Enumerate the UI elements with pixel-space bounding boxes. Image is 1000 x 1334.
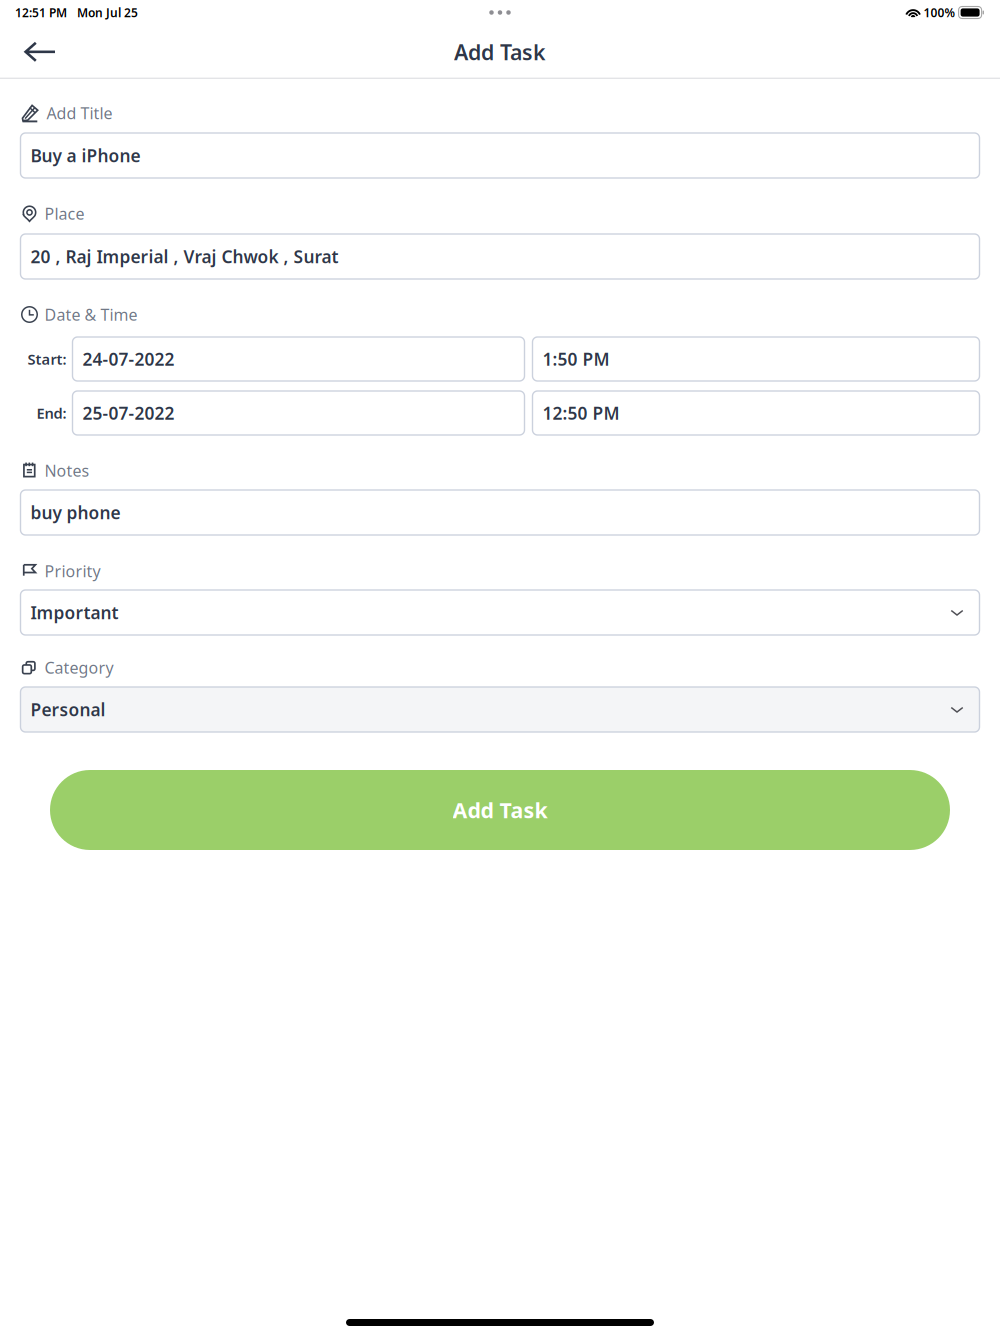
staticText: Category: [44, 657, 113, 678]
staticText: buy phone: [30, 501, 120, 524]
staticText: Buy a iPhone: [30, 144, 140, 167]
staticText: Date & Time: [44, 304, 137, 325]
staticText: 25-07-2022: [82, 401, 174, 424]
button[interactable]: Back: [0, 25, 79, 78]
staticText: 20 , Raj Imperial , Vraj Chwok , Surat: [30, 245, 338, 268]
staticText: Priority: [44, 560, 100, 582]
staticText: Place: [44, 203, 84, 224]
staticText: Add Title: [46, 102, 112, 124]
staticText: Personal: [30, 698, 105, 721]
staticText: 12:51 PM: [15, 4, 67, 20]
staticText: 100%: [924, 4, 956, 20]
staticText: Notes: [44, 460, 89, 481]
button[interactable]: Add Task: [50, 770, 950, 850]
staticText: Start:: [27, 349, 66, 369]
staticText: 12:50 PM: [542, 401, 619, 424]
staticText: Important: [30, 601, 118, 624]
staticText: Mon Jul 25: [77, 4, 138, 20]
staticText: 24-07-2022: [82, 347, 174, 370]
staticText: End:: [36, 403, 66, 423]
staticText: Add Task: [454, 38, 546, 66]
staticText: Add Task: [452, 796, 547, 824]
staticText: 1:50 PM: [542, 347, 609, 370]
